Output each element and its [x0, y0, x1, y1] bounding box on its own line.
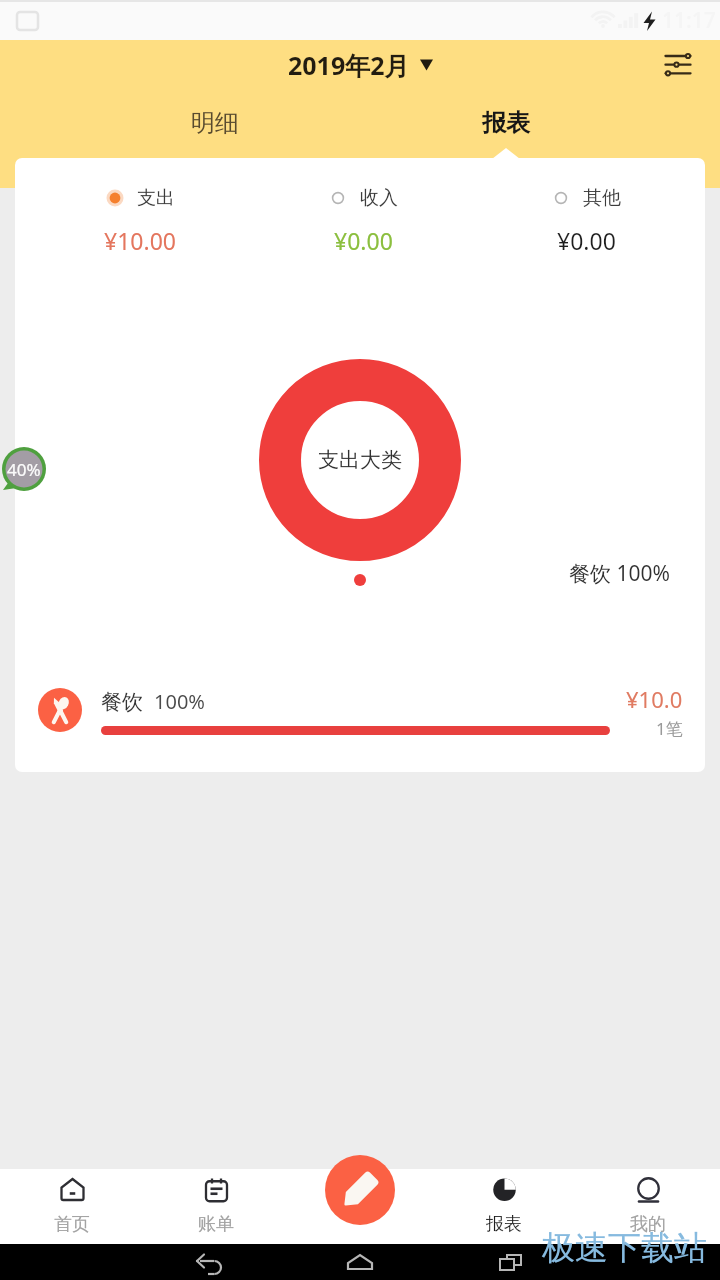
staticText: 2019年2月 — [288, 48, 410, 82]
staticText: ¥0.00 — [557, 225, 616, 256]
staticText: ¥10.0 — [626, 684, 683, 714]
button[interactable]: 收入 — [290, 186, 436, 256]
staticText: 我的 — [630, 1213, 666, 1236]
button[interactable]: 2019年2月 — [270, 44, 450, 86]
button[interactable]: Filter — [654, 42, 702, 88]
staticText: 账单 — [198, 1213, 234, 1236]
staticText: 其他 — [583, 186, 621, 210]
staticText: 100% — [154, 688, 205, 715]
staticText: 极速下载站 — [542, 1227, 707, 1269]
staticText: 1笔 — [656, 717, 683, 740]
staticText: 收入 — [360, 186, 398, 210]
button[interactable]: 报表 — [432, 1169, 576, 1244]
other: Recents — [496, 1252, 526, 1274]
button[interactable]: 明细 — [145, 96, 285, 150]
button[interactable] — [15, 672, 705, 748]
staticText: ¥10.00 — [104, 225, 176, 256]
button[interactable]: 账单 — [144, 1169, 288, 1244]
button[interactable]: 首页 — [0, 1169, 144, 1244]
staticText: 支出大类 — [318, 447, 402, 473]
other: Back — [192, 1250, 224, 1274]
staticText: 餐饮 100% — [569, 559, 670, 588]
staticText: 报表 — [482, 108, 530, 138]
staticText: 支出 — [137, 186, 175, 210]
staticText: ¥0.00 — [334, 225, 393, 256]
staticText: 明细 — [191, 108, 239, 138]
staticText: 40% — [7, 458, 41, 481]
button[interactable]: 其他 — [513, 186, 659, 256]
staticText: 首页 — [54, 1213, 90, 1236]
other: Home — [345, 1252, 375, 1274]
staticText: 报表 — [486, 1213, 522, 1236]
staticText: 餐饮 — [101, 689, 143, 715]
button[interactable]: 我的 — [576, 1169, 720, 1244]
button[interactable]: 支出 — [67, 186, 213, 256]
button[interactable]: Add record — [325, 1155, 395, 1225]
button[interactable]: 报表 — [436, 96, 576, 150]
